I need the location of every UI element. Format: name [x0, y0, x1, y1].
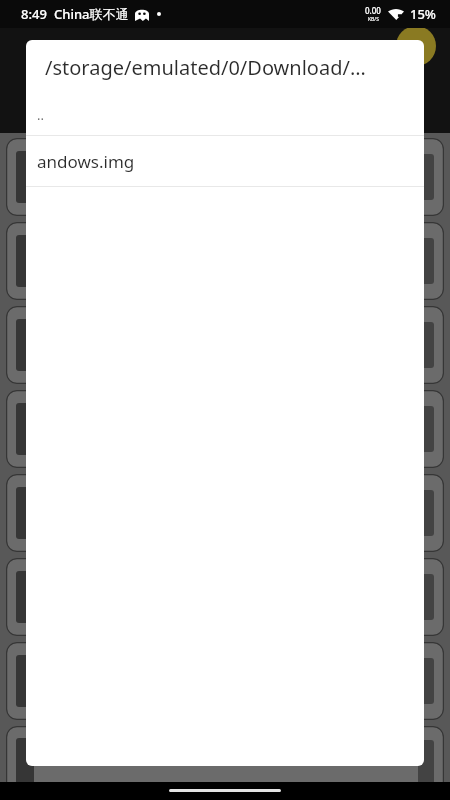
- button[interactable]: [6, 138, 444, 216]
- button[interactable]: [6, 558, 444, 636]
- staticText: ..: [37, 106, 44, 124]
- button[interactable]: [6, 222, 444, 300]
- staticText: 8:49: [21, 5, 47, 23]
- button[interactable]: [6, 474, 444, 552]
- staticText: 0.00: [365, 5, 381, 16]
- button[interactable]: [6, 306, 444, 384]
- button[interactable]: [6, 390, 444, 468]
- staticText: China联不通: [54, 5, 129, 23]
- button[interactable]: [6, 726, 444, 800]
- staticText: andows.img: [37, 150, 135, 173]
- button[interactable]: [6, 642, 444, 720]
- staticText: /storage/emulated/0/Download/…: [45, 54, 366, 81]
- staticText: KB/S: [368, 16, 379, 23]
- button[interactable]: Add: [396, 26, 436, 66]
- staticText: 15%: [410, 5, 436, 23]
- button[interactable]: andows.img: [26, 136, 424, 186]
- button[interactable]: /storage/emulated/0/Download/…: [26, 40, 424, 95]
